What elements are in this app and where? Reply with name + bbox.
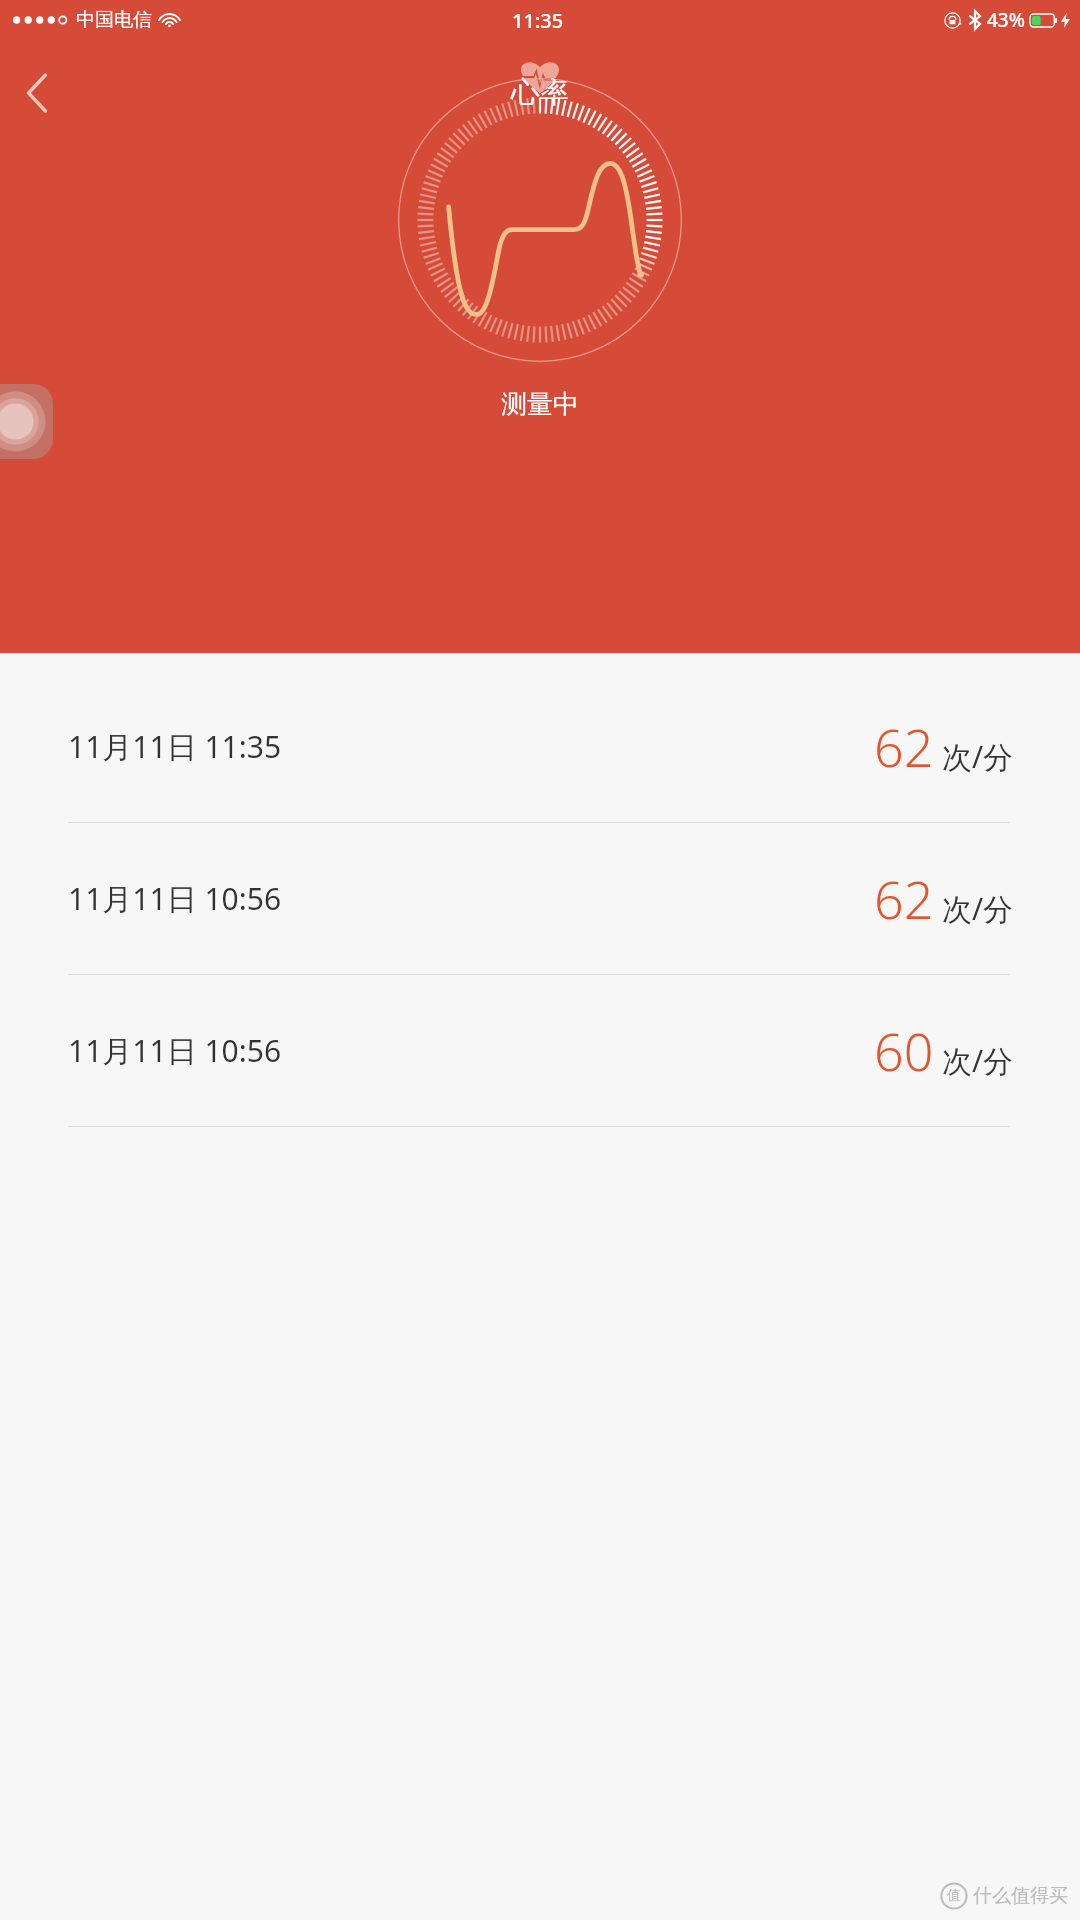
staticText: 测量中 [501, 388, 579, 421]
staticText: 62 [874, 711, 934, 782]
staticText: 心率 [511, 74, 569, 111]
button[interactable]: 11月11日 11:35 [0, 671, 1080, 822]
staticText: 什么值得买 [973, 1884, 1068, 1908]
staticText: 11月11日 10:56 [68, 878, 282, 919]
button[interactable]: 11月11日 10:56 [0, 975, 1080, 1126]
staticText: 11月11日 10:56 [68, 1030, 282, 1071]
staticText: 43% [987, 7, 1025, 33]
button[interactable]: Back [6, 62, 68, 124]
staticText: 中国电信 [76, 8, 152, 32]
staticText: 次/分 [942, 888, 1014, 929]
button[interactable]: 11月11日 10:56 [0, 823, 1080, 974]
staticText: 60 [874, 1015, 934, 1086]
staticText: 次/分 [942, 1040, 1014, 1081]
staticText: 次/分 [942, 736, 1014, 777]
staticText: 值 [947, 1887, 961, 1905]
staticText: 11:35 [512, 7, 564, 34]
staticText: 11月11日 11:35 [68, 726, 282, 767]
staticText: 62 [874, 863, 934, 934]
button[interactable]: AssistiveTouch [0, 384, 53, 459]
